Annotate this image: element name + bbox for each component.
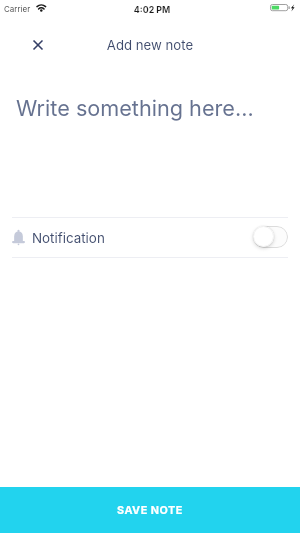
- staticText: Add new note: [0, 37, 300, 53]
- staticText: 4:02 PM: [2, 4, 300, 15]
- button[interactable]: Note text: [0, 72, 300, 217]
- staticText: SAVE NOTE: [117, 504, 183, 517]
- staticText: Carrier: [4, 4, 31, 14]
- button[interactable]: Close: [26, 33, 50, 57]
- staticText: Notification: [32, 230, 105, 246]
- button[interactable]: Notification: [0, 218, 300, 257]
- button[interactable]: SAVE NOTE: [0, 487, 300, 533]
- button[interactable]: Notification toggle, off: [253, 226, 288, 248]
- staticText: Write something here…: [16, 95, 254, 121]
